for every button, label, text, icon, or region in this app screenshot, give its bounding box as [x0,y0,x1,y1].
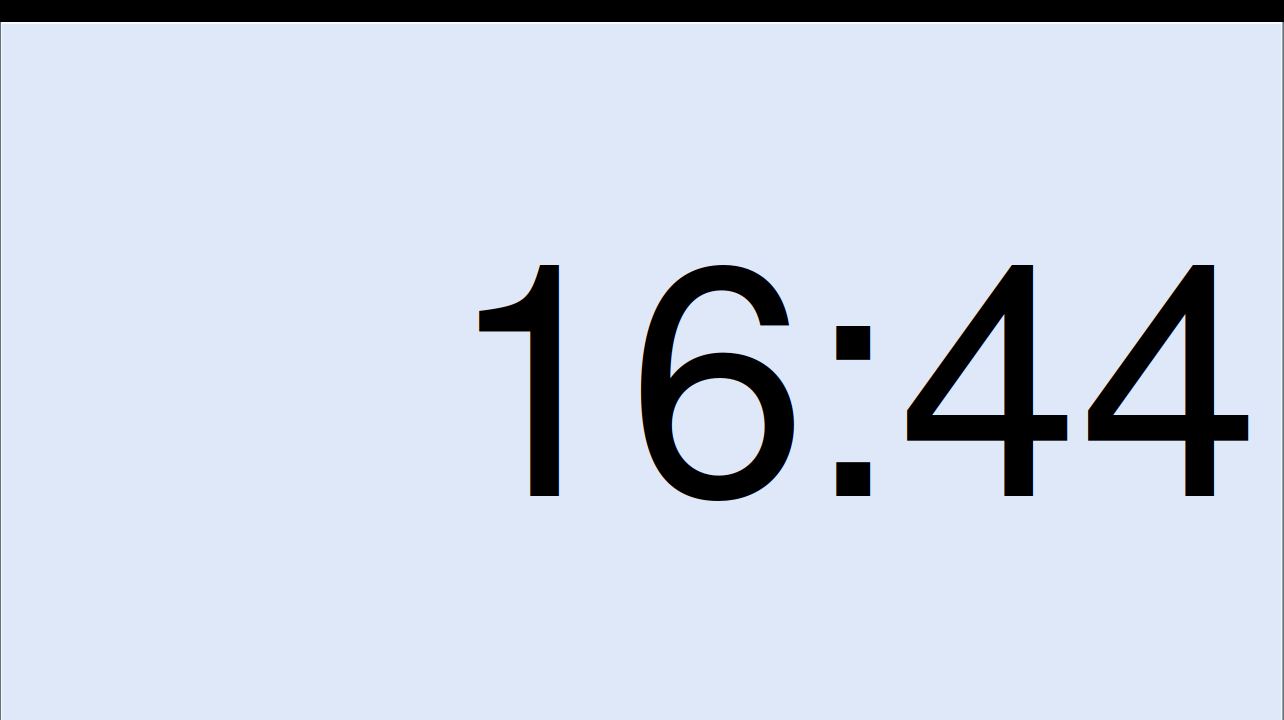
staticText: 16:44 [446,123,1260,588]
